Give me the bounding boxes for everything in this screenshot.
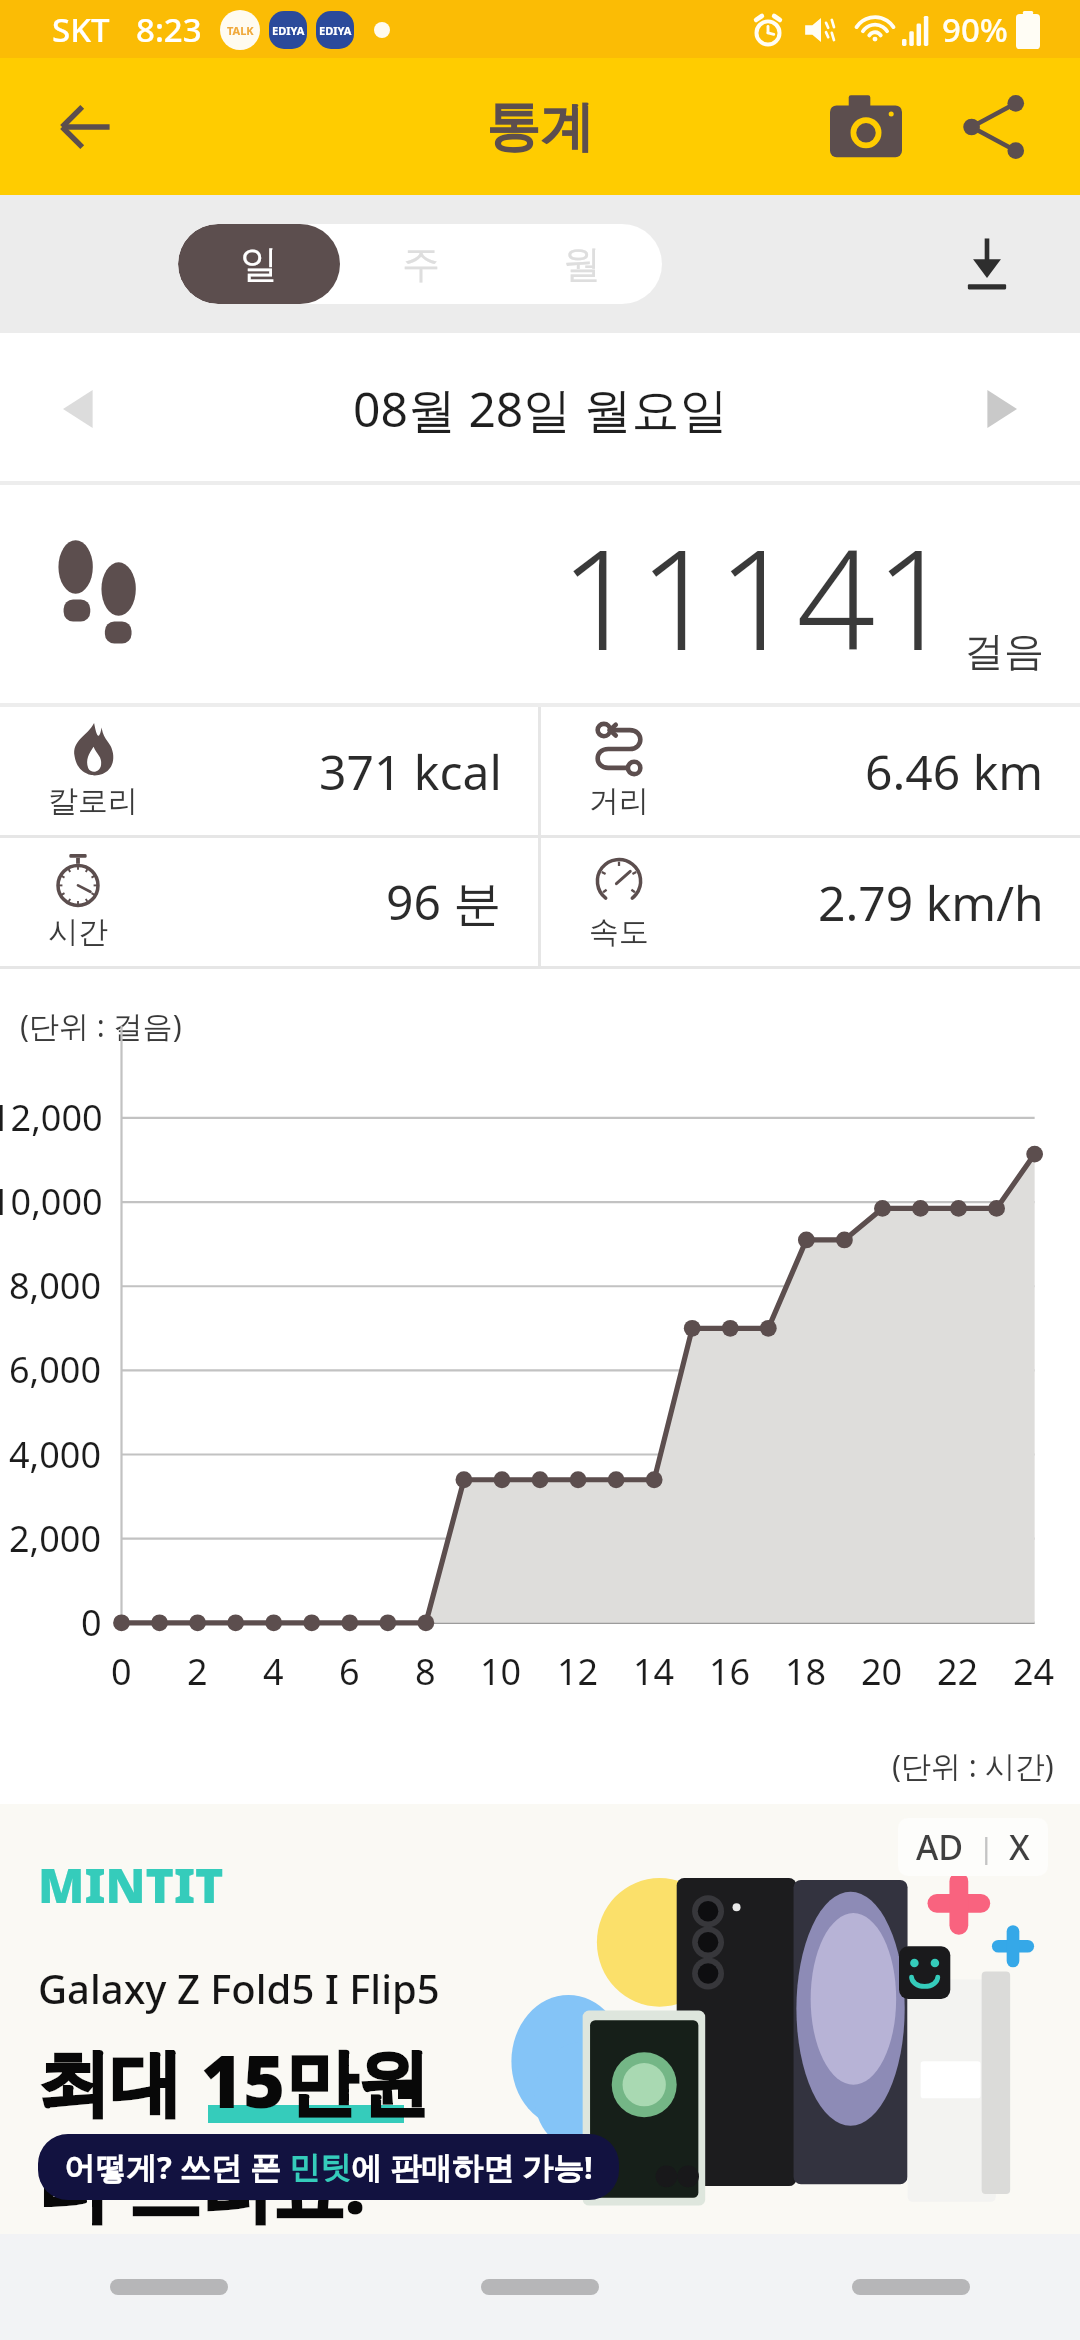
staticText: 6 xyxy=(339,1647,360,1696)
staticText: 90% xyxy=(942,7,1008,52)
staticText: 10 xyxy=(480,1647,522,1696)
staticText: 어떻게? 쓰던 폰 xyxy=(64,2146,289,2188)
staticText: TALK xyxy=(227,23,254,38)
staticText: 10,000 xyxy=(0,1177,103,1226)
staticText: 8,000 xyxy=(9,1261,102,1310)
staticText: 20 xyxy=(861,1647,903,1696)
staticText: 걸음 xyxy=(964,626,1044,676)
staticText: 12 xyxy=(557,1647,599,1696)
button[interactable]: Download xyxy=(932,209,1042,319)
button[interactable]: 속도 xyxy=(541,838,1080,966)
staticText: 22 xyxy=(937,1647,979,1696)
staticText: X xyxy=(1009,1824,1030,1870)
staticText: 18 xyxy=(785,1647,827,1696)
staticText: MINTIT xyxy=(38,1852,224,1917)
button[interactable]: Previous day xyxy=(22,349,142,469)
staticText: 8:23 xyxy=(136,7,202,52)
button[interactable]: 월 xyxy=(501,224,662,304)
button[interactable]: 거리 xyxy=(541,707,1080,835)
staticText: SKT xyxy=(52,7,110,52)
button[interactable]: 어떻게? 쓰던 폰 xyxy=(64,2146,593,2188)
staticText: 371 kcal xyxy=(319,739,502,804)
staticText: 시간 xyxy=(48,913,108,951)
staticText: 2 xyxy=(187,1647,208,1696)
staticText: 민팃 xyxy=(289,2148,351,2187)
staticText: 4 xyxy=(263,1647,284,1696)
staticText: 칼로리 xyxy=(48,782,138,820)
staticText: 0 xyxy=(81,1598,102,1647)
staticText: 16 xyxy=(709,1647,751,1696)
staticText: 96 분 xyxy=(386,869,502,935)
staticText: 2,000 xyxy=(9,1514,102,1563)
button[interactable]: Navigation button xyxy=(481,2279,599,2295)
button[interactable]: 주 xyxy=(340,224,501,304)
staticText: EDIYA xyxy=(319,23,352,38)
staticText: 2.79 km/h xyxy=(818,870,1044,935)
staticText: 14 xyxy=(633,1647,675,1696)
button[interactable]: Share xyxy=(930,63,1058,191)
staticText: Galaxy Z Fold5 I Flip5 xyxy=(38,1961,440,2015)
staticText: 더 드려요! xyxy=(38,2137,366,2234)
button[interactable]: Navigation button xyxy=(110,2279,228,2295)
staticText: 통계 xyxy=(486,93,594,161)
staticText: | xyxy=(964,1828,1009,1866)
staticText: 월 xyxy=(563,240,601,288)
button[interactable]: 칼로리 xyxy=(0,707,538,835)
button[interactable]: Navigation button xyxy=(852,2279,970,2295)
staticText: EDIYA xyxy=(272,23,305,38)
staticText: 11141 xyxy=(560,502,954,690)
staticText: 4,000 xyxy=(9,1430,102,1479)
staticText: (단위 : 걸음) xyxy=(20,1005,182,1046)
button[interactable]: 시간 xyxy=(0,838,538,966)
staticText: (단위 : 시간) xyxy=(892,1745,1054,1786)
staticText: 최대 15만원 xyxy=(38,2031,430,2129)
button[interactable]: MINTIT xyxy=(0,1804,1080,2234)
staticText: 거리 xyxy=(589,782,649,820)
button[interactable]: 일 xyxy=(178,224,340,304)
button[interactable]: Close ad xyxy=(916,1824,1030,1870)
button[interactable]: Next day xyxy=(938,349,1058,469)
staticText: 에 판매하면 가능! xyxy=(351,2146,593,2188)
staticText: AD xyxy=(916,1824,964,1870)
staticText: 8 xyxy=(415,1647,436,1696)
staticText: 6.46 km xyxy=(865,739,1044,804)
staticText: 24 xyxy=(1013,1647,1055,1696)
button[interactable]: Back xyxy=(18,58,158,195)
staticText: 일 xyxy=(240,240,278,288)
staticText: 6,000 xyxy=(9,1345,102,1394)
staticText: 08월 28일 월요일 xyxy=(353,376,728,442)
button[interactable]: Camera xyxy=(802,63,930,191)
staticText: 주 xyxy=(402,240,440,288)
staticText: 12,000 xyxy=(0,1093,103,1142)
staticText: 0 xyxy=(111,1647,132,1696)
staticText: 속도 xyxy=(589,913,649,951)
